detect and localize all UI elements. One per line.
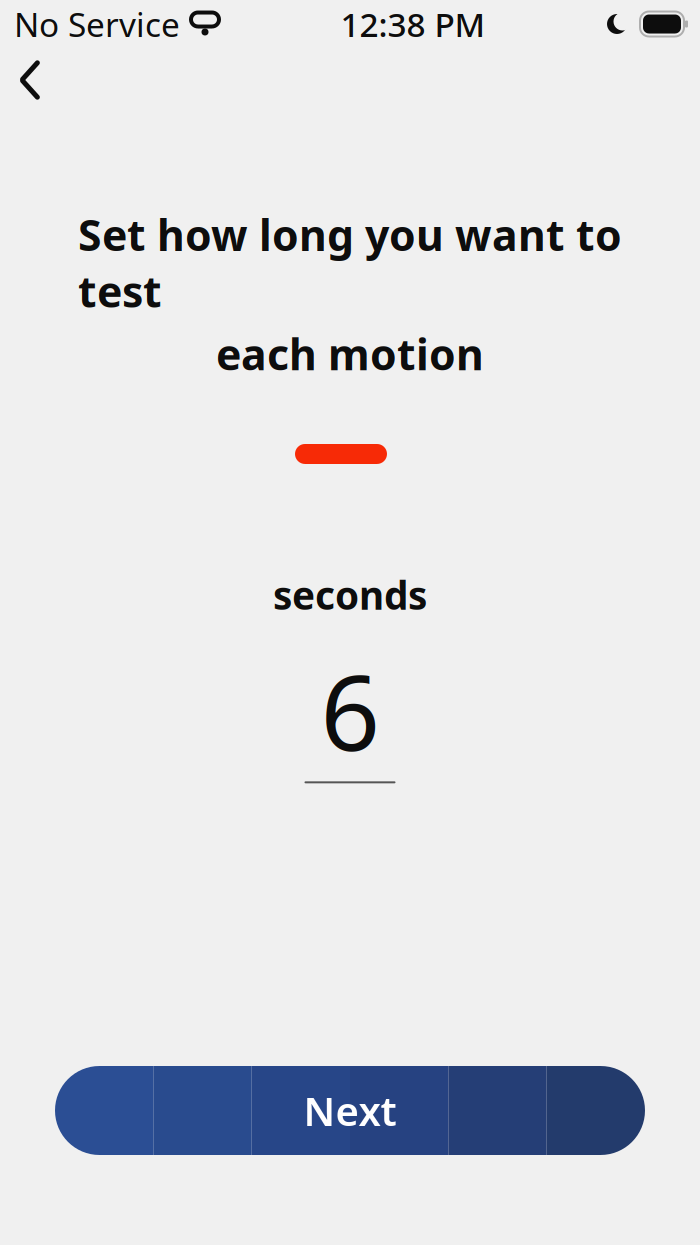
staticText: seconds bbox=[273, 569, 427, 620]
button[interactable]: Back bbox=[0, 52, 60, 108]
staticText: 6 bbox=[320, 641, 379, 779]
staticText: Next bbox=[303, 1084, 396, 1137]
staticText: No Service bbox=[14, 2, 180, 46]
staticText: 12:38 PM bbox=[340, 2, 485, 46]
staticText: Set how long you want to test bbox=[78, 206, 622, 319]
button[interactable]: Next bbox=[55, 1066, 645, 1155]
staticText: each motion bbox=[216, 325, 484, 382]
